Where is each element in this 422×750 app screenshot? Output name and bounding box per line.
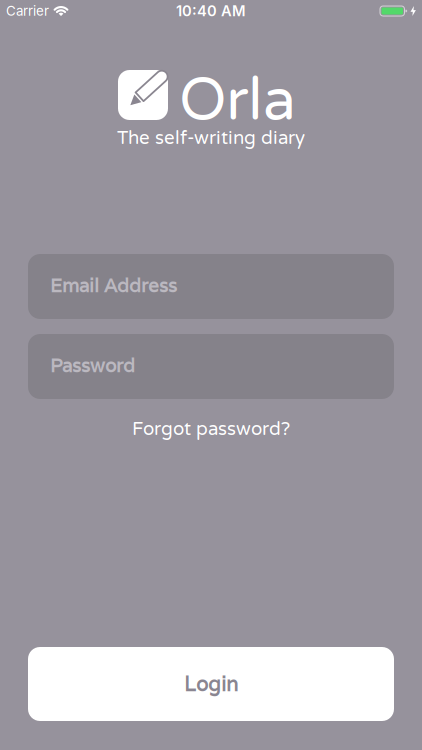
staticText: Carrier xyxy=(6,3,49,19)
staticText: Orla xyxy=(179,66,296,136)
button[interactable]: Email Address xyxy=(28,254,394,319)
staticText: Forgot password? xyxy=(132,418,290,440)
button[interactable]: Password xyxy=(28,334,394,399)
staticText: Password xyxy=(50,353,135,378)
staticText: 10:40 AM xyxy=(176,2,246,20)
staticText: Email Address xyxy=(50,273,177,298)
staticText: Login xyxy=(184,671,238,697)
button[interactable]: Login xyxy=(28,647,394,721)
button[interactable]: Forgot password? xyxy=(132,417,290,441)
staticText: The self-writing diary xyxy=(117,127,305,149)
